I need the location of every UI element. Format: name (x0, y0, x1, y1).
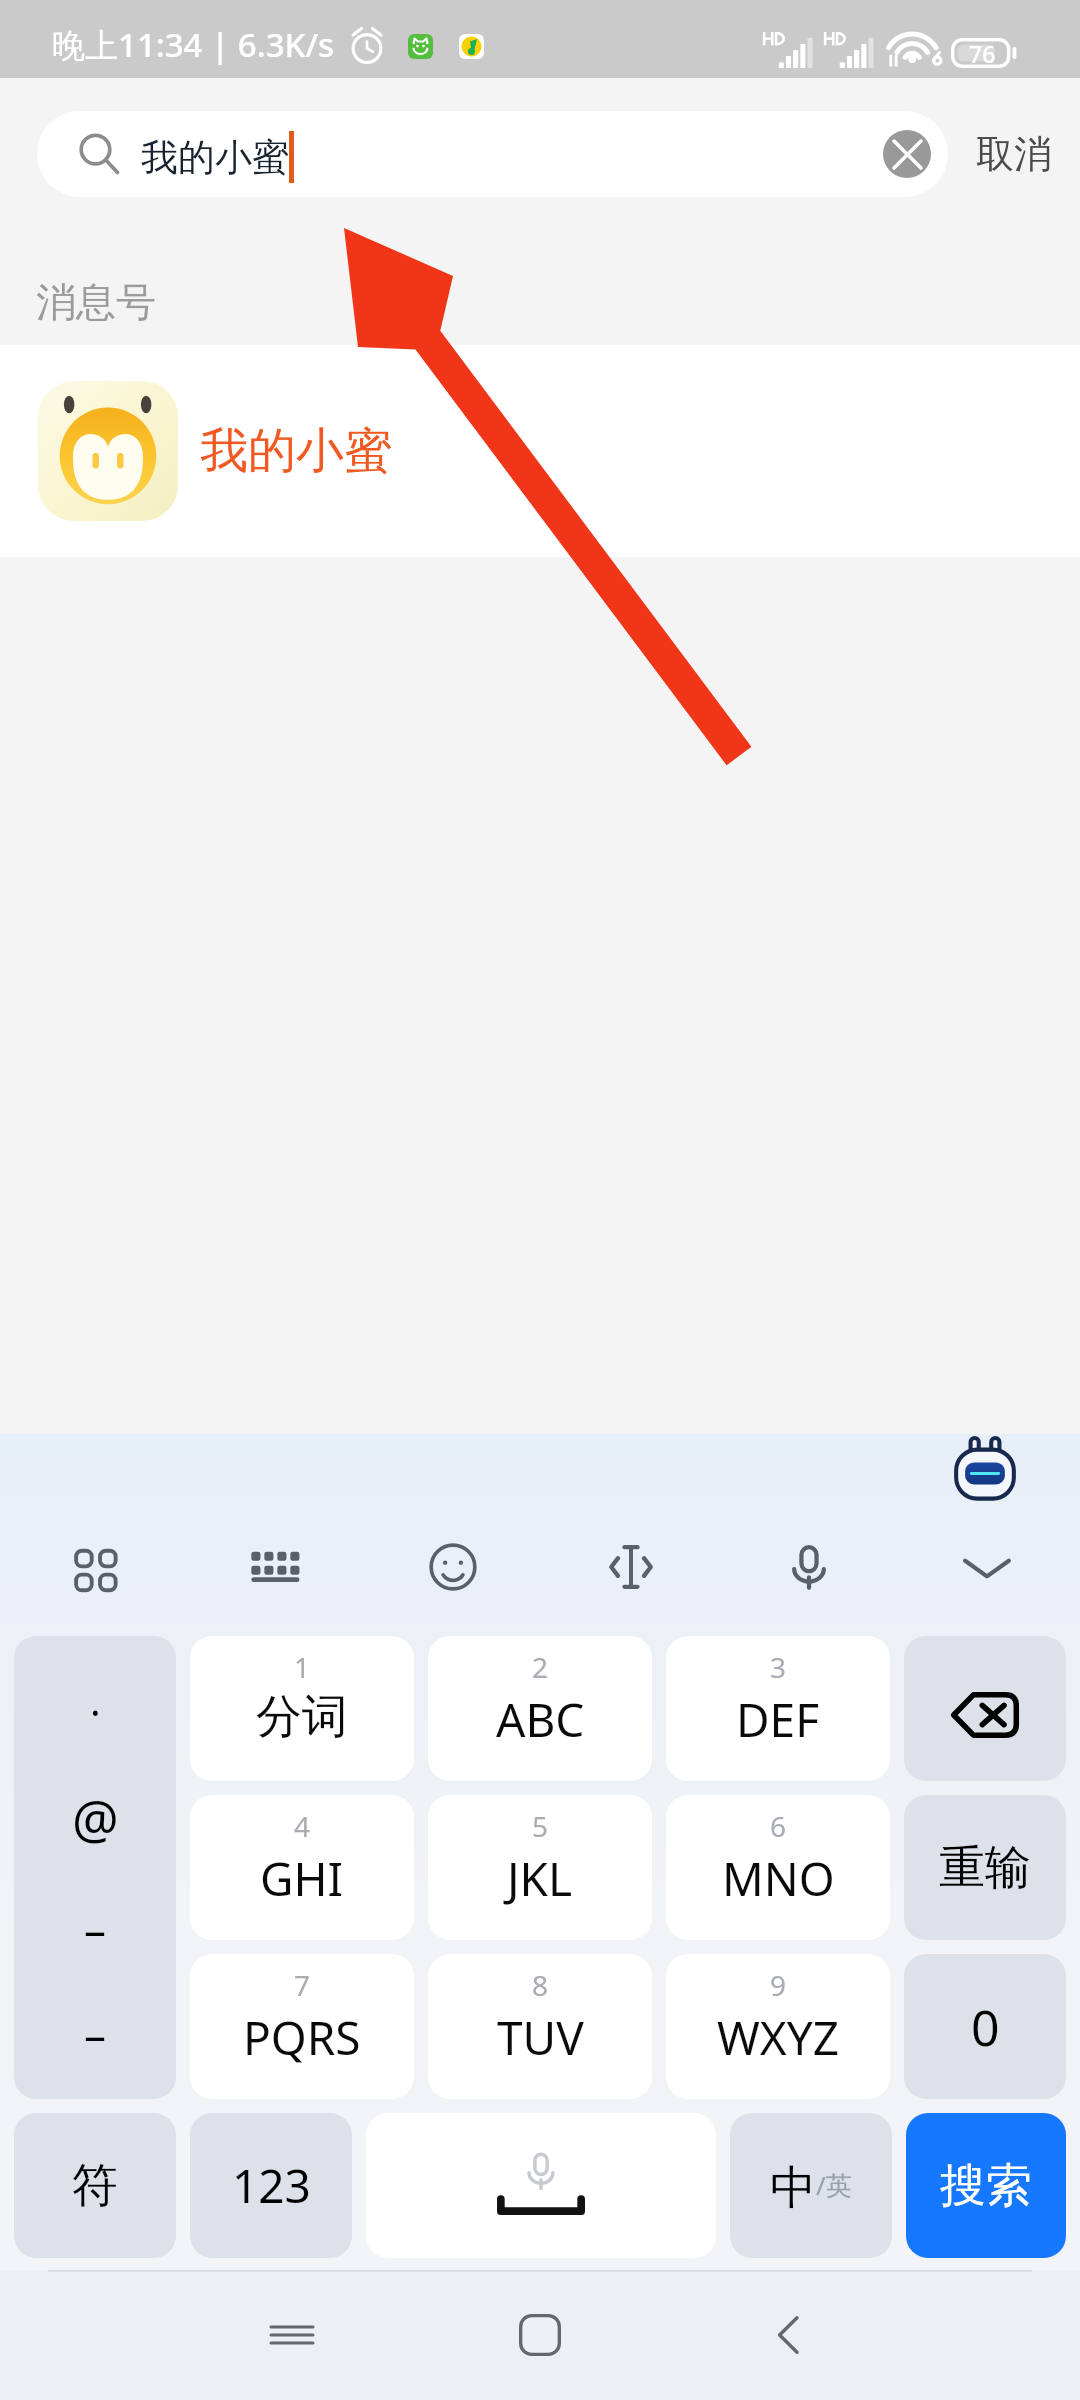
staticText: – (84, 1899, 106, 1959)
button[interactable]: 0 (904, 1954, 1066, 2099)
staticText: 消息号 (36, 277, 156, 327)
button[interactable]: 搜索 (906, 2113, 1066, 2258)
staticText: 中 (770, 2159, 816, 2217)
staticText: MNO (722, 1847, 835, 1910)
button[interactable]: 分词 (190, 1636, 414, 1781)
staticText: – (84, 2004, 106, 2064)
button[interactable]: GHI (190, 1795, 414, 1940)
staticText: 取消 (976, 130, 1052, 178)
button[interactable]: Backspace (904, 1636, 1066, 1781)
button[interactable]: 取消 (948, 111, 1080, 197)
button[interactable]: 我的小蜜 (37, 111, 948, 197)
button[interactable]: 123 (190, 2113, 352, 2258)
staticText: 76 (969, 38, 996, 68)
button[interactable]: ABC (428, 1636, 652, 1781)
staticText: GHI (260, 1847, 344, 1910)
button[interactable]: Recent apps (168, 2270, 416, 2400)
button[interactable]: 我的小蜜 (0, 345, 1080, 557)
staticText: WXYZ (717, 2006, 840, 2069)
staticText: 5 (532, 1807, 549, 1845)
button[interactable]: TUV (428, 1954, 652, 2099)
staticText: JKL (507, 1847, 573, 1910)
staticText: 符 (72, 2157, 118, 2215)
staticText: 7 (294, 1966, 311, 2004)
staticText: 3 (770, 1648, 787, 1686)
button[interactable]: 符 (14, 2113, 176, 2258)
button[interactable]: DEF (666, 1636, 890, 1781)
button[interactable]: Voice input (720, 1505, 898, 1629)
button[interactable]: Symbols (14, 1636, 176, 2099)
staticText: 分词 (256, 1688, 348, 1746)
button[interactable]: Hide keyboard (898, 1505, 1076, 1629)
button[interactable]: Apps (6, 1505, 185, 1629)
button[interactable]: MNO (666, 1795, 890, 1940)
staticText: 2 (532, 1648, 549, 1686)
staticText: 1 (294, 1648, 311, 1686)
button[interactable]: Home (416, 2270, 664, 2400)
button[interactable]: PQRS (190, 1954, 414, 2099)
staticText: TUV (497, 2006, 584, 2069)
staticText: 4 (294, 1807, 311, 1845)
staticText: 9 (770, 1966, 787, 2004)
button[interactable]: Chinese English toggle (730, 2113, 892, 2258)
staticText: 重输 (939, 1839, 1031, 1897)
staticText: @ (72, 1783, 119, 1854)
staticText: 0 (971, 1993, 1000, 2061)
staticText: 8 (532, 1966, 549, 2004)
button[interactable]: WXYZ (666, 1954, 890, 2099)
staticText: 搜索 (940, 2157, 1032, 2215)
button[interactable]: Space (366, 2113, 716, 2258)
staticText: 我的小蜜 (200, 421, 392, 481)
button[interactable]: AI assistant (946, 1434, 1024, 1505)
button[interactable]: 重输 (904, 1795, 1066, 1940)
button[interactable]: Move cursor (542, 1505, 720, 1629)
button[interactable]: Clear text (883, 130, 931, 178)
button[interactable]: JKL (428, 1795, 652, 1940)
button[interactable]: Emoji (364, 1505, 542, 1629)
staticText: 晚上11:34 | 6.3K/s (52, 22, 335, 67)
button[interactable]: Back (664, 2270, 912, 2400)
staticText: 123 (232, 2154, 311, 2217)
staticText: · (90, 1684, 101, 1738)
staticText: DEF (736, 1688, 820, 1751)
staticText: 我的小蜜 (141, 134, 289, 181)
button[interactable]: Keyboard layout (185, 1505, 364, 1629)
staticText: 6 (770, 1807, 787, 1845)
staticText: PQRS (243, 2006, 361, 2069)
staticText: /英 (816, 2167, 852, 2203)
staticText: ABC (496, 1688, 585, 1751)
